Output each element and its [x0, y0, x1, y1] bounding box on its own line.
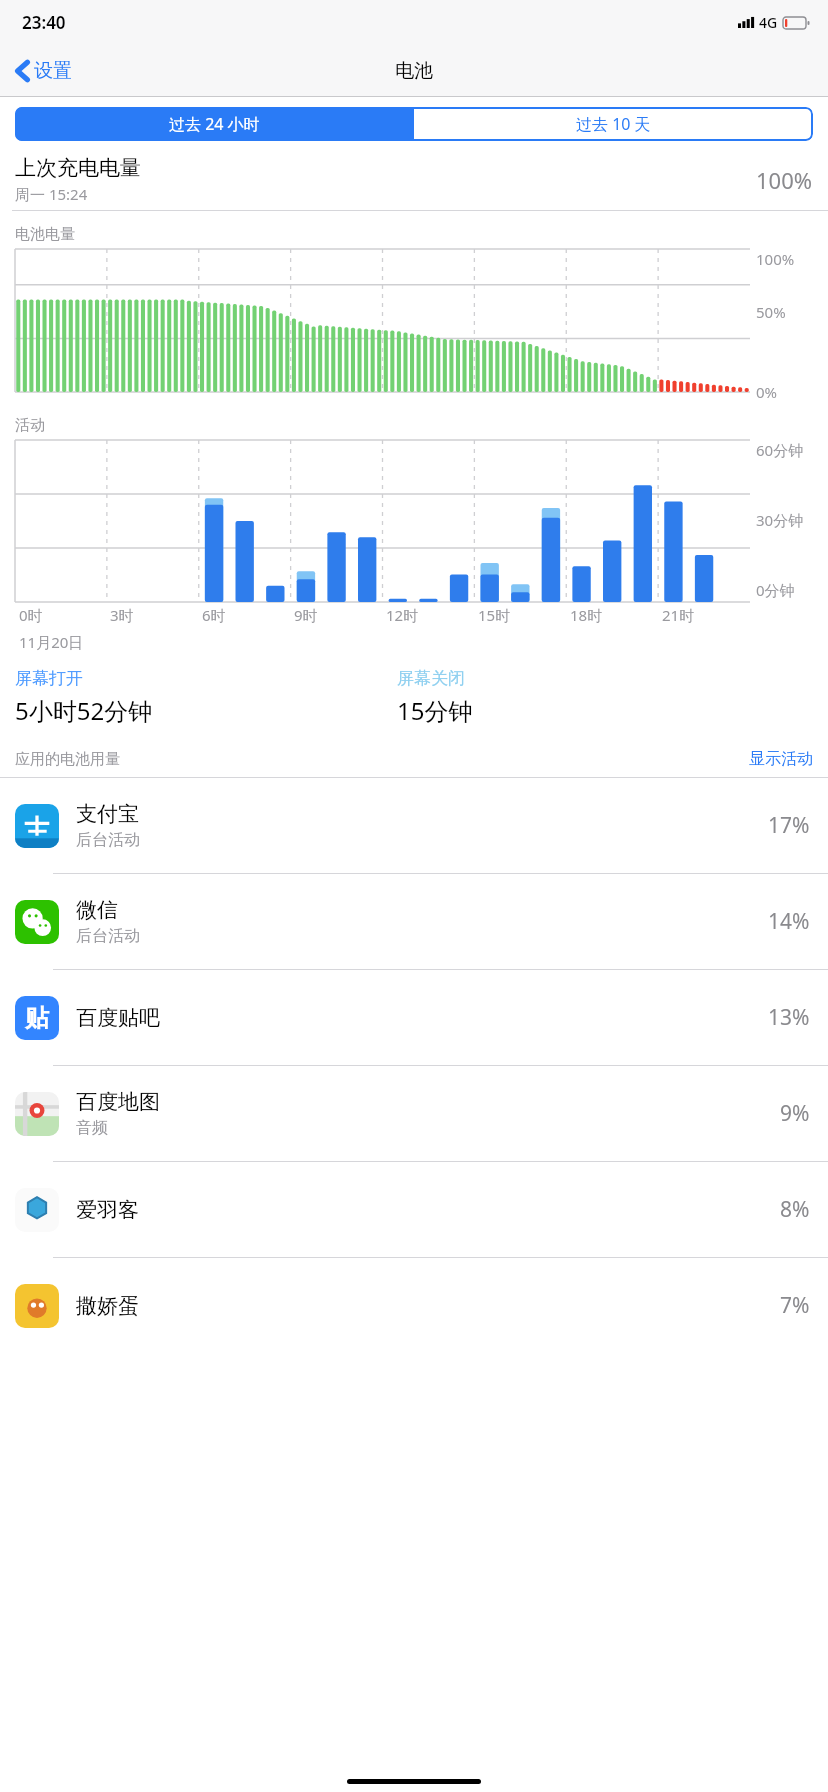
button[interactable]: 设置 [12, 53, 76, 89]
staticText: 13% [768, 1003, 810, 1032]
staticText: 0% [756, 382, 778, 402]
staticText: 9% [780, 1099, 810, 1128]
staticText: 4G [759, 13, 778, 32]
staticText: 后台活动 [76, 830, 140, 850]
staticText: 贴 [25, 1003, 49, 1033]
staticText: 显示活动 [749, 749, 813, 769]
staticText: 微信 [76, 897, 118, 923]
staticText: 21时 [662, 605, 695, 625]
button[interactable]: 过去 10 天 [414, 107, 813, 141]
button[interactable]: 微信 [0, 874, 828, 969]
staticText: 5小时52分钟 [15, 694, 153, 727]
button[interactable]: 贴 [0, 970, 828, 1065]
button[interactable]: 爱羽客 [0, 1162, 828, 1257]
staticText: 18时 [570, 605, 603, 625]
button[interactable]: 支付宝 [0, 778, 828, 873]
staticText: 100% [756, 165, 813, 195]
button[interactable]: 显示活动 [749, 749, 813, 769]
button[interactable]: 撒娇蛋 [0, 1258, 828, 1353]
staticText: 60分钟 [756, 440, 804, 460]
staticText: 百度地图 [76, 1089, 160, 1115]
staticText: 周一 15:24 [15, 184, 88, 204]
staticText: 后台活动 [76, 926, 140, 946]
staticText: 电池电量 [15, 225, 75, 244]
staticText: 音频 [76, 1118, 108, 1138]
staticText: 23:40 [22, 11, 66, 34]
staticText: 7% [780, 1291, 810, 1320]
button[interactable]: 过去 24 小时 [15, 107, 414, 141]
staticText: 6时 [202, 605, 226, 625]
staticText: 应用的电池用量 [15, 750, 749, 769]
staticText: 百度贴吧 [76, 1005, 160, 1031]
staticText: 支付宝 [76, 801, 139, 827]
staticText: 上次充电电量 [15, 155, 141, 181]
staticText: 17% [768, 811, 810, 840]
staticText: 15时 [478, 605, 511, 625]
staticText: 电池 [395, 59, 433, 83]
staticText: 8% [780, 1195, 810, 1224]
staticText: 3时 [110, 605, 134, 625]
staticText: 30分钟 [756, 510, 804, 530]
staticText: 15分钟 [397, 694, 473, 727]
staticText: 屏幕关闭 [397, 668, 465, 689]
staticText: 过去 10 天 [576, 113, 651, 135]
staticText: 0分钟 [756, 580, 795, 600]
button[interactable]: 百度地图 [0, 1066, 828, 1161]
staticText: 设置 [34, 59, 72, 83]
staticText: 过去 24 小时 [169, 113, 260, 135]
staticText: 撒娇蛋 [76, 1293, 139, 1319]
staticText: 100% [756, 249, 795, 269]
staticText: 爱羽客 [76, 1197, 139, 1223]
staticText: 0时 [19, 605, 43, 625]
staticText: 14% [768, 907, 810, 936]
staticText: 12时 [386, 605, 419, 625]
staticText: 11月20日 [19, 632, 84, 652]
staticText: 屏幕打开 [15, 668, 83, 689]
staticText: 50% [756, 302, 786, 322]
staticText: 9时 [294, 605, 318, 625]
staticText: 活动 [15, 416, 45, 435]
